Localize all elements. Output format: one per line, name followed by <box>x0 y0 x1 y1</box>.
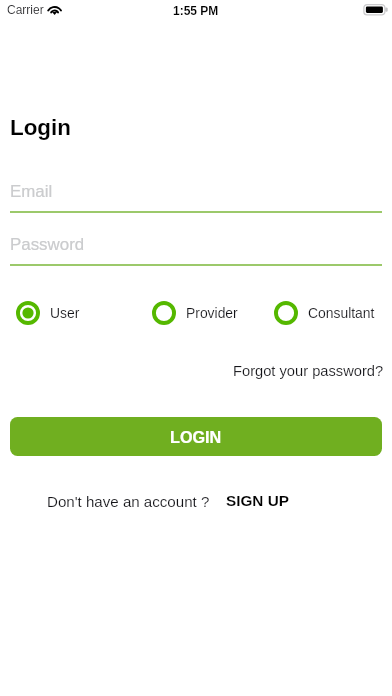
staticText: Carrier <box>7 3 44 16</box>
button[interactable]: Forgot your password? <box>233 363 392 379</box>
button[interactable]: Password <box>10 235 382 266</box>
staticText: 1:55 PM <box>173 4 219 17</box>
staticText: Email <box>10 182 53 201</box>
other: Wi-Fi <box>47 4 63 15</box>
button[interactable]: LOGIN <box>10 417 382 456</box>
staticText: Consultant <box>308 305 375 321</box>
staticText: Login <box>10 115 71 140</box>
button[interactable]: SIGN UP <box>226 492 289 509</box>
staticText: Provider <box>186 305 238 321</box>
staticText: SIGN UP <box>226 492 289 509</box>
other: Battery <box>363 4 388 15</box>
staticText: Forgot your password? <box>233 363 384 379</box>
button[interactable]: User <box>16 301 152 325</box>
staticText: Password <box>10 235 85 254</box>
staticText: User <box>50 305 80 321</box>
button[interactable]: Provider <box>152 301 274 325</box>
staticText: LOGIN <box>170 428 222 446</box>
button[interactable]: Email <box>10 182 382 213</box>
staticText: Don't have an account ? <box>47 493 210 510</box>
button[interactable]: Consultant <box>274 301 375 325</box>
